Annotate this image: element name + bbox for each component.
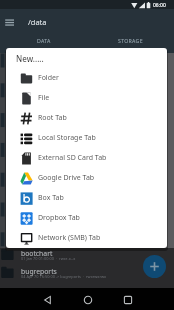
button[interactable] xyxy=(34,289,61,310)
staticText: Root Tab xyxy=(38,113,67,123)
button[interactable] xyxy=(143,255,166,278)
staticText: bootchart xyxy=(21,249,53,258)
button[interactable]: STORAGE xyxy=(87,32,174,53)
staticText: 04 Apr 70 16:50:00 -> bugreports · rwxrw… xyxy=(21,274,107,279)
button[interactable]: External SD Card Tab xyxy=(6,148,167,168)
staticText: 06:00 xyxy=(153,2,166,9)
button[interactable]: Box Tab xyxy=(6,188,167,208)
button[interactable]: Dropbox Tab xyxy=(6,208,167,228)
button[interactable] xyxy=(74,289,101,310)
staticText: Dropbox Tab xyxy=(38,213,80,223)
button[interactable] xyxy=(114,289,141,310)
staticText: External SD Card Tab xyxy=(38,153,107,163)
staticText: Box Tab xyxy=(38,193,64,203)
button[interactable] xyxy=(3,18,17,28)
staticText: File xyxy=(38,93,50,103)
staticText: Local Storage Tab xyxy=(38,133,96,143)
staticText: STORAGE xyxy=(118,37,143,44)
button[interactable]: Local Storage Tab xyxy=(6,128,167,148)
button[interactable]: File xyxy=(6,88,167,108)
staticText: New..... xyxy=(16,53,44,64)
staticText: 01 Jan 70 01:00:00 · rwxr-x--x xyxy=(21,256,76,261)
button[interactable]: Root Tab xyxy=(6,108,167,128)
staticText: DATA xyxy=(37,37,51,44)
button[interactable]: Google Drive Tab xyxy=(6,168,167,188)
staticText: Folder xyxy=(38,73,59,83)
staticText: Google Drive Tab xyxy=(38,173,95,183)
staticText: Network (SMB) Tab xyxy=(38,233,101,243)
button[interactable]: DATA xyxy=(0,32,87,53)
button[interactable]: Folder xyxy=(6,68,167,88)
staticText: bugreports xyxy=(21,267,57,276)
button[interactable]: Network (SMB) Tab xyxy=(6,228,167,248)
staticText: /data xyxy=(28,17,47,27)
